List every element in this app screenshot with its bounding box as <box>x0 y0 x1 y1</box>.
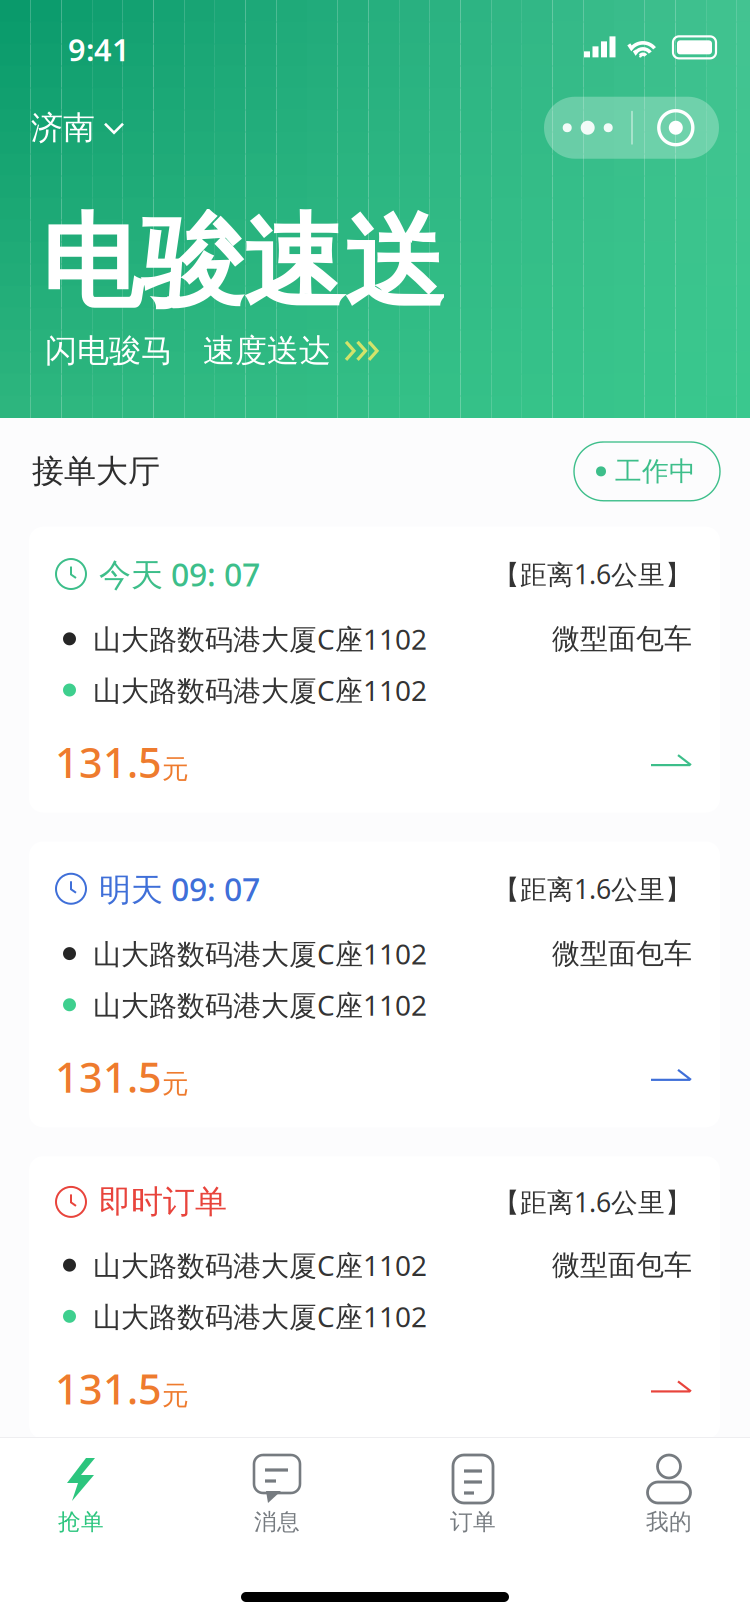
staticText: 工作中 <box>615 455 696 488</box>
button[interactable]: 我的 <box>629 1438 709 1542</box>
staticText: 131.5 <box>55 1361 162 1416</box>
staticText: 山大路数码港大厦C座1102 <box>93 986 427 1023</box>
button[interactable]: 即时订单 <box>29 1156 720 1439</box>
staticText: 山大路数码港大厦C座1102 <box>93 620 427 657</box>
staticText: 今天 09: 07 <box>99 553 260 595</box>
button[interactable]: 工作中 <box>574 442 720 501</box>
button[interactable]: More and Close <box>544 97 719 159</box>
staticText: 131.5 <box>55 735 162 789</box>
staticText: 山大路数码港大厦C座1102 <box>93 1247 427 1284</box>
staticText: 9:41 <box>68 29 130 70</box>
staticText: 消息 <box>254 1508 300 1536</box>
staticText: 元 <box>162 1068 189 1100</box>
staticText: 即时订单 <box>99 1182 227 1222</box>
staticText: 山大路数码港大厦C座1102 <box>93 671 427 709</box>
staticText: 接单大厅 <box>32 452 160 491</box>
staticText: 订单 <box>450 1508 496 1536</box>
button[interactable]: 济南 <box>31 102 126 153</box>
staticText: 【距离1.6公里】 <box>493 871 692 906</box>
staticText: 131.5 <box>55 1049 162 1104</box>
staticText: 山大路数码港大厦C座1102 <box>93 1298 427 1335</box>
staticText: 闪电骏马 速度送达 <box>45 331 331 370</box>
staticText: 元 <box>162 753 189 786</box>
staticText: 微型面包车 <box>552 936 692 971</box>
staticText: 我的 <box>646 1508 692 1536</box>
button[interactable]: 订单 <box>433 1438 513 1542</box>
button[interactable]: 明天 09: 07 <box>29 841 720 1127</box>
staticText: 明天 09: 07 <box>99 867 260 910</box>
staticText: 元 <box>162 1379 189 1412</box>
staticText: 抢单 <box>58 1508 104 1536</box>
staticText: 【距离1.6公里】 <box>493 1184 692 1220</box>
staticText: 微型面包车 <box>552 622 692 656</box>
button[interactable]: 抢单 <box>41 1438 121 1542</box>
staticText: 【距离1.6公里】 <box>493 556 692 592</box>
staticText: 电骏速送 <box>41 201 445 325</box>
staticText: 济南 <box>31 108 95 147</box>
staticText: 微型面包车 <box>552 1248 692 1282</box>
button[interactable]: 今天 09: 07 <box>29 527 720 812</box>
button[interactable]: 消息 <box>237 1438 317 1542</box>
staticText: 山大路数码港大厦C座1102 <box>93 935 427 972</box>
